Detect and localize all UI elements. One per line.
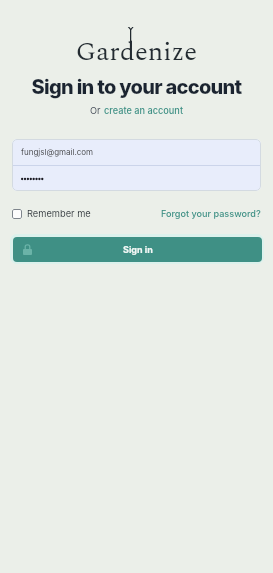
button[interactable]: Sign in	[13, 237, 262, 262]
staticText: Forgot your password?	[161, 208, 261, 219]
staticText: fungjsl@gmail.com	[21, 147, 94, 157]
button[interactable]: create an account	[104, 105, 184, 116]
staticText: Gardenize	[0, 32, 273, 72]
button[interactable]	[12, 166, 261, 191]
staticText: create an account	[104, 105, 184, 116]
button[interactable]: Forgot your password?	[161, 208, 261, 219]
staticText: Or	[90, 105, 104, 116]
button[interactable]: fungjsl@gmail.com	[12, 139, 261, 165]
button[interactable]: Remember me	[12, 208, 91, 219]
staticText: Sign in to your account	[0, 75, 273, 99]
staticText: Sign in	[123, 244, 153, 255]
staticText: Remember me	[27, 208, 91, 219]
